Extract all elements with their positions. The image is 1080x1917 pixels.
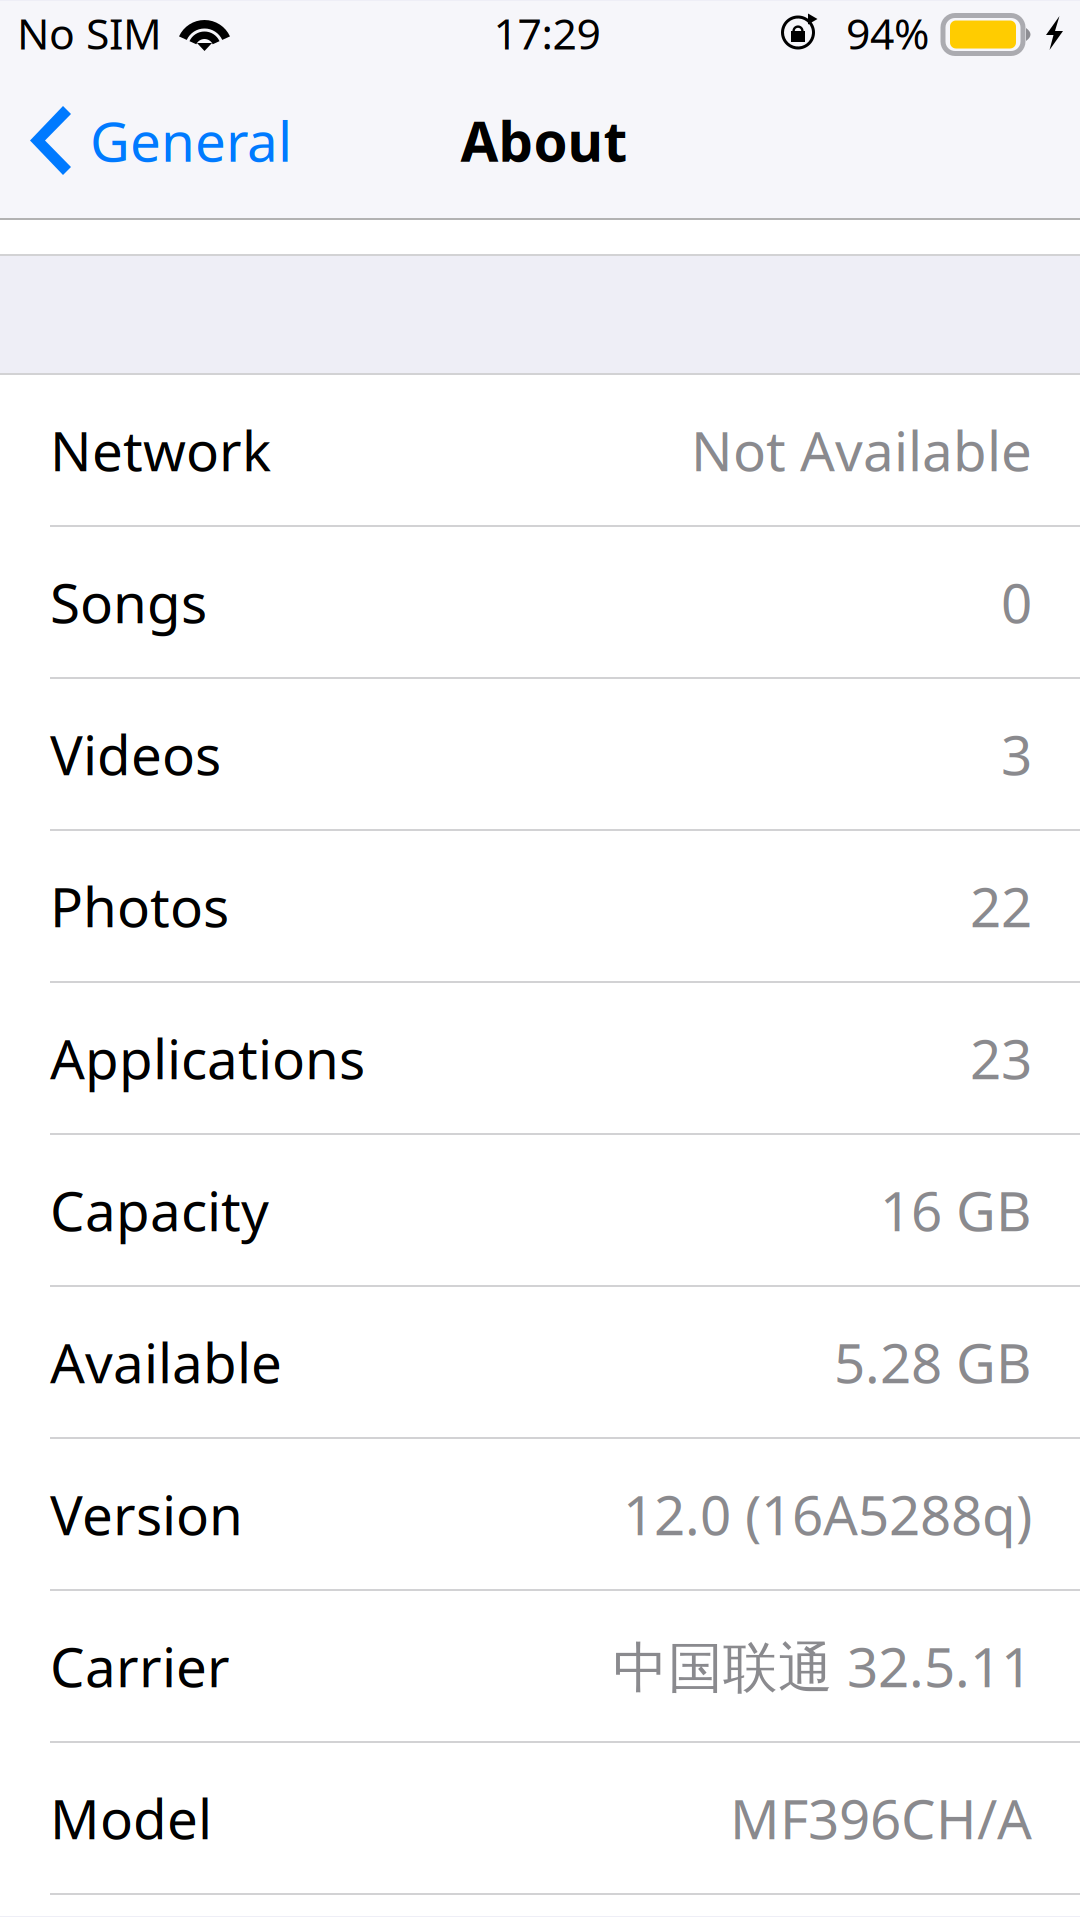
- staticText: Carrier: [50, 1630, 230, 1702]
- staticText: 0: [1001, 566, 1032, 638]
- staticText: Songs: [50, 566, 207, 638]
- button[interactable]: Capacity: [0, 1135, 1080, 1285]
- staticText: Available: [50, 1326, 282, 1398]
- staticText: Network: [50, 414, 271, 486]
- staticText: 22: [970, 870, 1032, 942]
- staticText: 94%: [846, 5, 929, 61]
- staticText: General: [90, 104, 292, 177]
- button[interactable]: General: [0, 79, 316, 218]
- staticText: Videos: [50, 718, 221, 790]
- staticText: No SIM: [17, 5, 162, 61]
- staticText: Version: [50, 1478, 243, 1550]
- staticText: 12.0 (16A5288q): [623, 1478, 1032, 1550]
- button[interactable]: Videos: [0, 679, 1080, 829]
- button[interactable]: Network: [0, 375, 1080, 525]
- staticText: 中国联通 32.5.11: [613, 1630, 1032, 1702]
- staticText: Capacity: [50, 1174, 269, 1246]
- staticText: 3: [1001, 718, 1032, 790]
- staticText: Model: [50, 1782, 212, 1854]
- button[interactable]: Songs: [0, 527, 1080, 677]
- button[interactable]: Version: [0, 1439, 1080, 1589]
- staticText: 5.28 GB: [834, 1326, 1032, 1398]
- staticText: Photos: [50, 870, 229, 942]
- staticText: 17:29: [493, 5, 600, 61]
- staticText: 23: [970, 1022, 1032, 1094]
- button[interactable]: Photos: [0, 831, 1080, 981]
- staticText: Applications: [50, 1022, 365, 1094]
- staticText: 16 GB: [880, 1174, 1032, 1246]
- button[interactable]: Carrier: [0, 1591, 1080, 1741]
- button[interactable]: Applications: [0, 983, 1080, 1133]
- button[interactable]: Serial Number: [0, 1895, 1080, 1917]
- button[interactable]: Available: [0, 1287, 1080, 1437]
- button[interactable]: Model: [0, 1743, 1080, 1893]
- staticText: MF396CH/A: [730, 1782, 1032, 1854]
- staticText: About: [460, 104, 627, 177]
- staticText: Not Available: [691, 414, 1032, 486]
